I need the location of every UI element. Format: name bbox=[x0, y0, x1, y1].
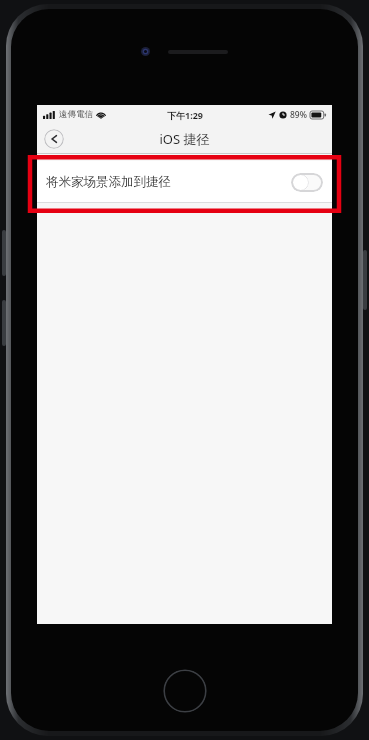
staticText: 遠傳電信 bbox=[59, 109, 93, 120]
button[interactable]: 将米家场景添加到捷径 bbox=[37, 161, 332, 203]
staticText: iOS 捷径 bbox=[159, 130, 210, 148]
staticText: 89% bbox=[290, 109, 307, 121]
staticText: 将米家场景添加到捷径 bbox=[46, 174, 171, 190]
button[interactable]: Home bbox=[163, 669, 207, 713]
staticText: 下午1:29 bbox=[167, 109, 203, 121]
button[interactable]: 将米家场景添加到捷径 toggle, off bbox=[291, 173, 323, 192]
button[interactable]: Back bbox=[44, 129, 64, 149]
